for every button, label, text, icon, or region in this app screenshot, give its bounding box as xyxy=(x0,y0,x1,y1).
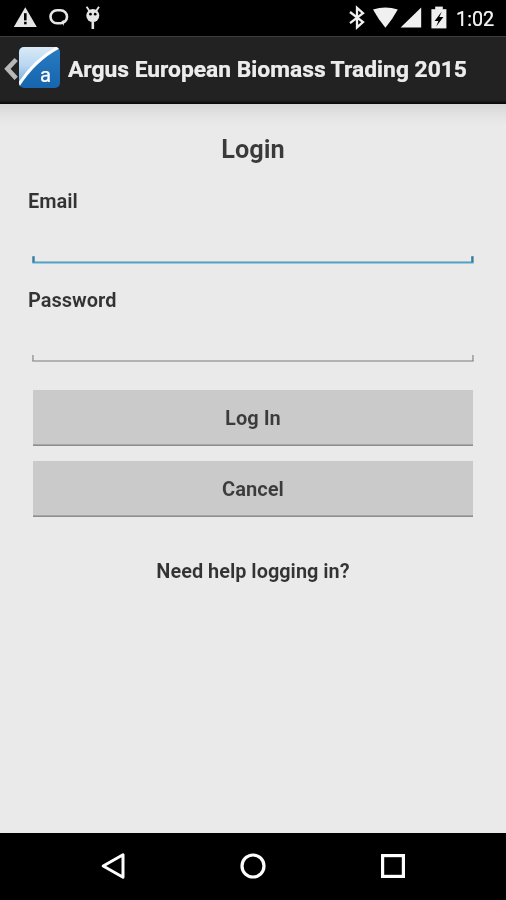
staticText: Cancel xyxy=(222,477,284,501)
button[interactable]: Password input field xyxy=(32,313,474,361)
button[interactable]: Need help logging in? xyxy=(150,554,356,586)
button[interactable]: Home xyxy=(240,853,266,879)
button[interactable]: Cancel xyxy=(33,461,473,517)
button[interactable]: Back xyxy=(2,52,20,86)
button[interactable]: Email input field xyxy=(32,214,474,262)
staticText: Email xyxy=(28,189,78,212)
staticText: Log In xyxy=(225,406,281,430)
button[interactable]: Back xyxy=(100,853,126,879)
staticText: Login xyxy=(0,134,506,164)
staticText: Password xyxy=(28,288,117,311)
staticText: 1:02 xyxy=(456,8,495,31)
staticText: a xyxy=(40,63,51,87)
staticText: Argus European Biomass Trading 2015 xyxy=(68,56,467,83)
button[interactable]: Log In xyxy=(33,390,473,446)
staticText: Need help logging in? xyxy=(156,560,350,583)
button[interactable]: Recent apps xyxy=(381,854,405,878)
